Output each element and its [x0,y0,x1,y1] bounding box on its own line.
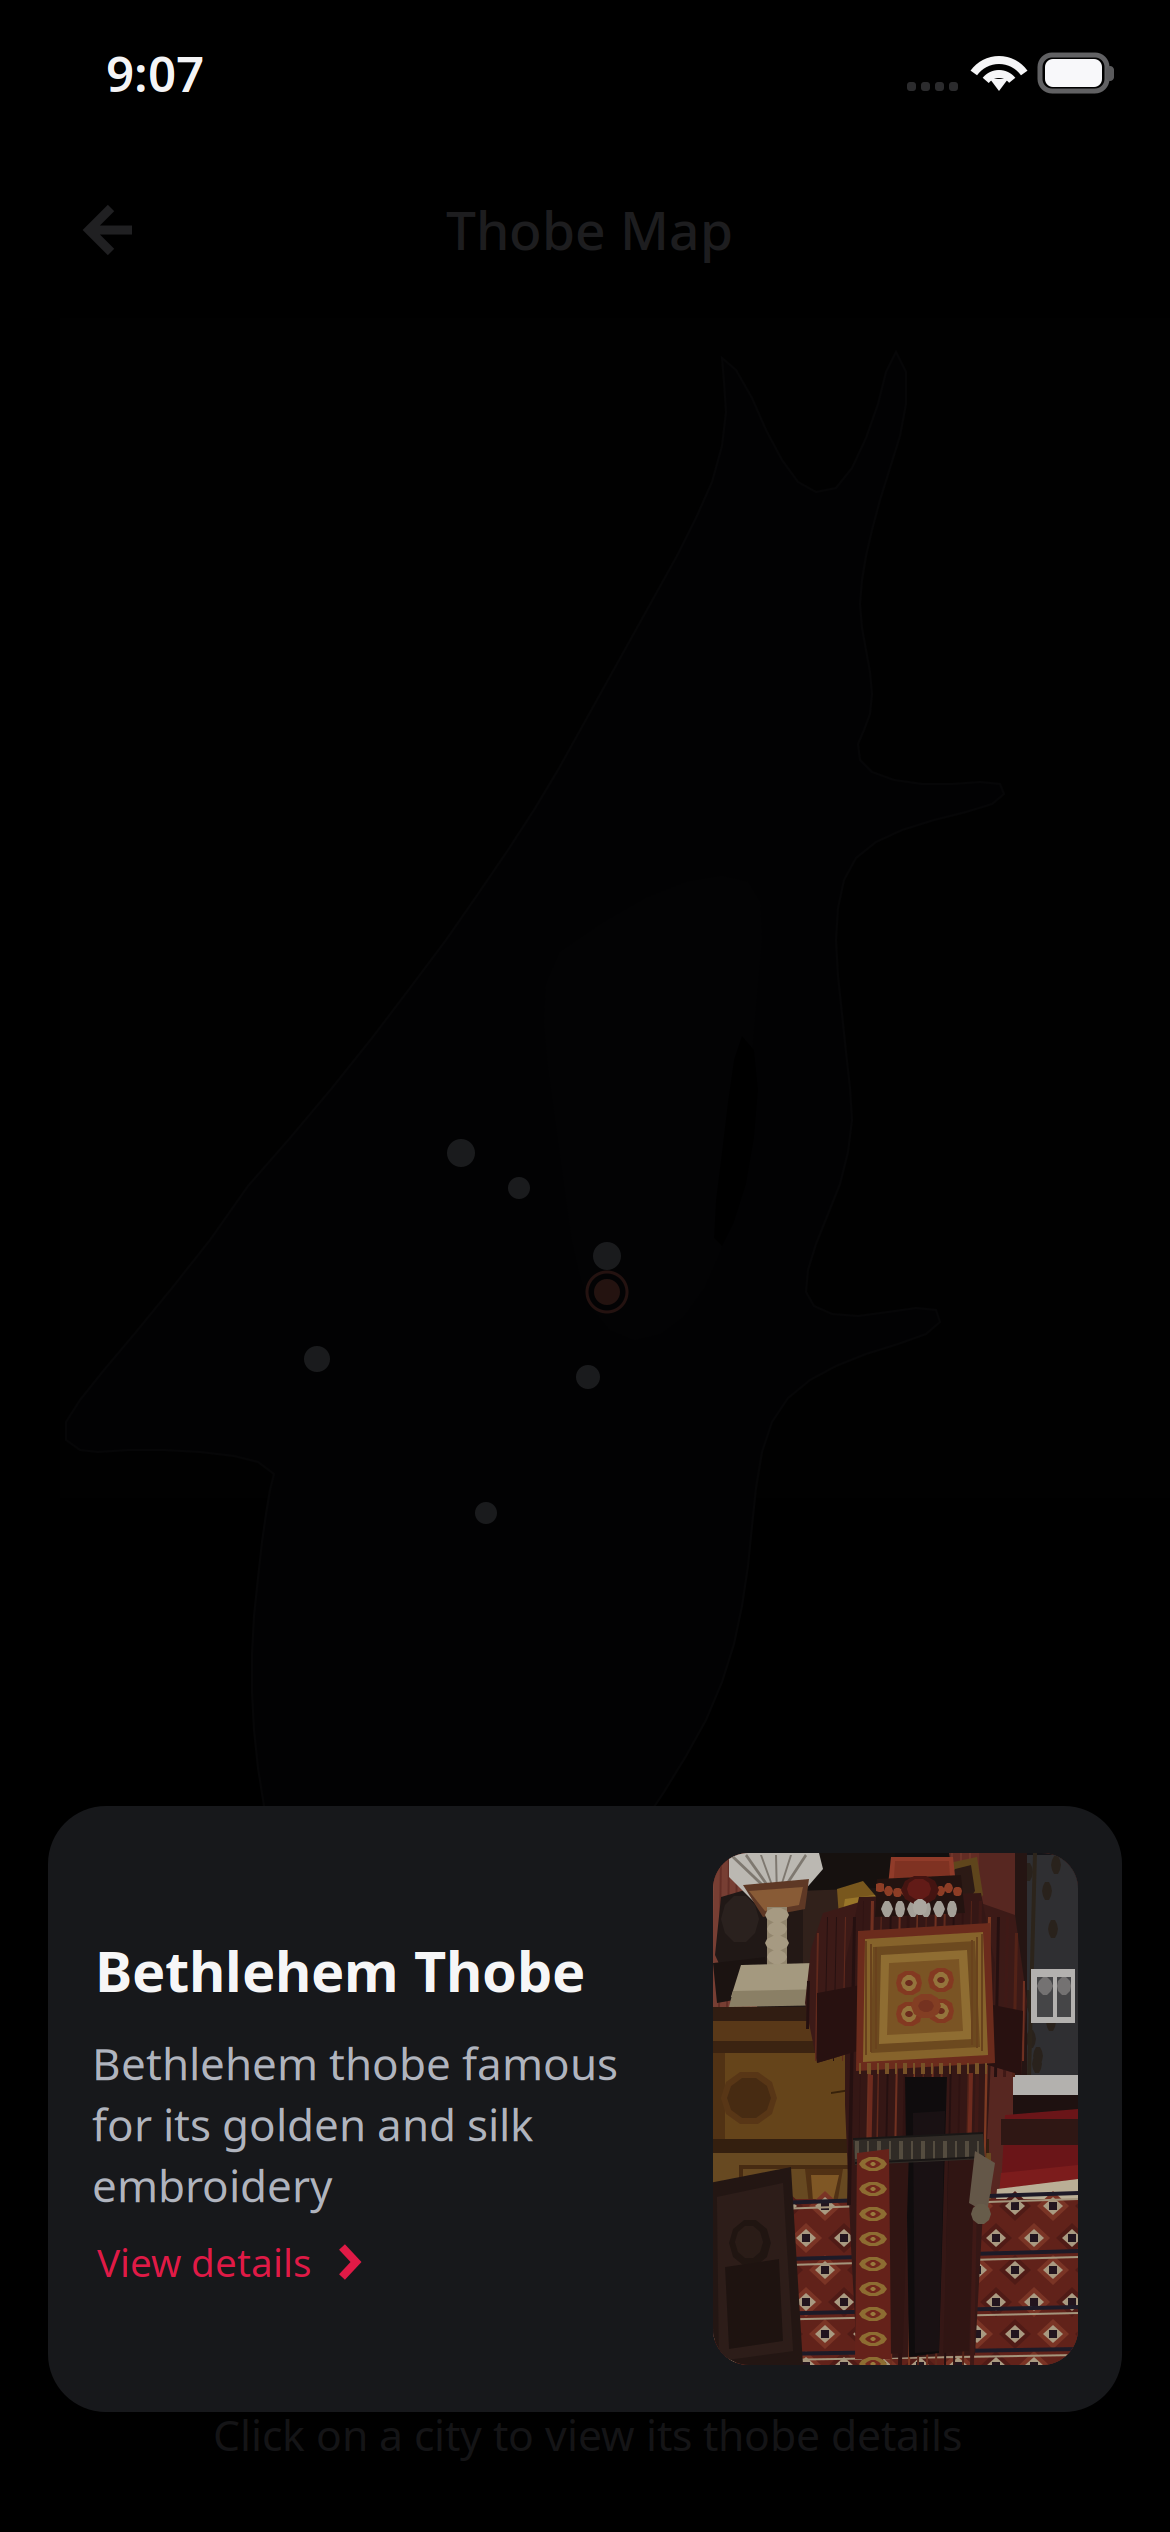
staticText: 9:07 [106,40,204,105]
staticText: for its golden and silk [92,2095,533,2153]
button[interactable]: Beersheba [463,1490,509,1536]
staticText: View details [97,2236,312,2288]
button[interactable]: Back [54,176,166,284]
button[interactable]: Hebron [564,1353,612,1401]
staticText: Bethlehem thobe famous [92,2034,618,2092]
button[interactable]: Jerusalem [581,1230,633,1282]
button[interactable]: Bethlehem [582,1267,632,1317]
button[interactable]: Jericho [496,1165,542,1211]
staticText: Thobe Map [446,194,733,265]
staticText: embroidery [92,2156,332,2214]
staticText: Click on a city to view its thobe detail… [213,2406,962,2463]
button[interactable]: Gaza [292,1334,342,1384]
button[interactable]: View details [97,2234,397,2290]
button[interactable]: Ramallah [435,1127,487,1179]
staticText: Bethlehem Thobe [95,1933,585,2007]
